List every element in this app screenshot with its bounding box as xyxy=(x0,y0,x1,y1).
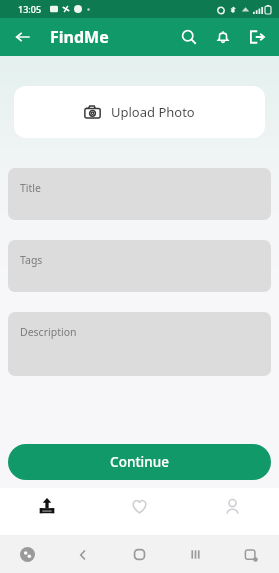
staticText: Tags xyxy=(20,253,43,267)
button[interactable]: Favorites xyxy=(93,488,186,524)
button[interactable]: Upload Photo xyxy=(14,86,265,138)
button[interactable]: Notifications xyxy=(209,23,237,51)
staticText: 13:05 xyxy=(18,3,42,15)
staticText: FindMe xyxy=(50,26,109,48)
button[interactable]: Log out xyxy=(243,23,271,51)
button[interactable]: Profile xyxy=(186,488,279,524)
button[interactable]: Search xyxy=(175,23,203,51)
staticText: Continue xyxy=(110,453,169,471)
button[interactable]: Continue xyxy=(8,444,271,480)
button[interactable]: Description xyxy=(8,312,271,376)
button[interactable]: Upload xyxy=(0,488,93,524)
staticText: Title xyxy=(20,181,41,195)
button[interactable]: Title xyxy=(8,168,271,220)
staticText: Upload Photo xyxy=(111,103,195,121)
button[interactable]: Back xyxy=(10,24,36,50)
staticText: Description xyxy=(20,325,77,339)
button[interactable]: Tags xyxy=(8,240,271,292)
